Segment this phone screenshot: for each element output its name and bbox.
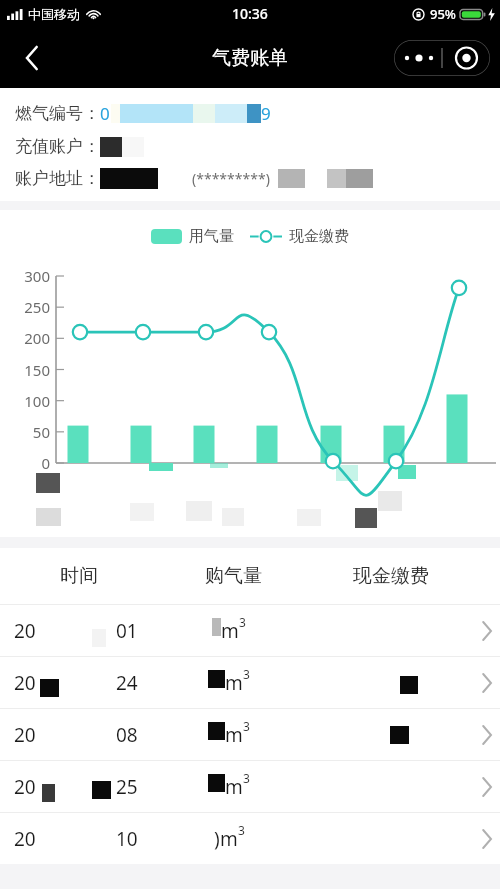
staticText: 9 [261,102,271,125]
staticText: m [225,670,243,696]
staticText: 账户地址： [15,168,100,189]
staticText: 01 [116,618,138,644]
staticText: 3 [243,666,250,682]
staticText: 20 [14,826,36,852]
staticText: 20 [14,618,36,644]
button[interactable]: 20 [0,813,500,864]
staticText: 0 [41,453,50,473]
staticText: 3 [238,822,245,838]
staticText: 3 [239,614,246,630]
staticText: 3 [243,718,250,734]
staticText: 95% [430,5,456,23]
staticText: 时间 [60,564,98,588]
staticText: 现金缴费 [353,564,429,588]
staticText: 08 [116,722,138,748]
staticText: 3 [243,770,250,786]
staticText: m [221,618,239,644]
staticText: 20 [14,774,36,800]
staticText: 20 [14,670,36,696]
staticText: 50 [32,422,50,442]
button[interactable]: 20 [0,605,500,656]
staticText: 24 [116,670,138,696]
staticText: 300 [24,266,50,286]
staticText: 25 [116,774,138,800]
staticText: 0 [100,102,110,125]
staticText: 10:36 [232,4,268,23]
staticText: 100 [24,391,50,411]
staticText: m [220,826,238,852]
staticText: 250 [24,297,50,317]
button[interactable]: Back [10,36,54,80]
staticText: 用气量 [189,227,234,246]
staticText: 现金缴费 [289,227,349,246]
staticText: 200 [24,328,50,348]
staticText: 购气量 [205,564,262,588]
staticText: m [225,722,243,748]
button[interactable]: 20 [0,709,500,760]
staticText: 20 [14,722,36,748]
staticText: m [225,774,243,800]
staticText: 燃气编号： [15,103,100,124]
staticText: 150 [24,360,50,380]
staticText: 气费账单 [212,46,288,70]
staticText: ) [214,826,220,852]
staticText: 充值账户： [15,136,100,157]
staticText: (*********) [192,169,270,188]
button[interactable]: 20 [0,657,500,708]
staticText: 10 [116,826,138,852]
staticText: 中国移动 [28,6,80,22]
button[interactable]: 20 [0,761,500,812]
